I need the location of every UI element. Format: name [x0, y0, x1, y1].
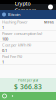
staticText: 100	[2, 36, 8, 42]
staticText: Bitcoin	[8, 12, 20, 17]
staticText: 0.1	[2, 48, 7, 53]
staticText: Crypto Compare	[14, 0, 36, 14]
staticText: Power consumption (w)	[2, 31, 42, 36]
staticText: Cost per kWh ($)	[2, 42, 31, 48]
staticText: Hashing Power	[2, 19, 28, 25]
staticText: 1	[2, 25, 4, 30]
button[interactable]: Account	[48, 4, 53, 9]
button[interactable]: Share	[10, 93, 15, 98]
staticText: 1	[2, 59, 4, 65]
button[interactable]: Reset	[2, 93, 7, 98]
staticText: Pool Fee (%)	[2, 54, 22, 59]
staticText: MH/s	[44, 19, 54, 25]
staticText: Profit per year	[18, 79, 38, 82]
staticText: $ 366.83	[14, 82, 42, 91]
